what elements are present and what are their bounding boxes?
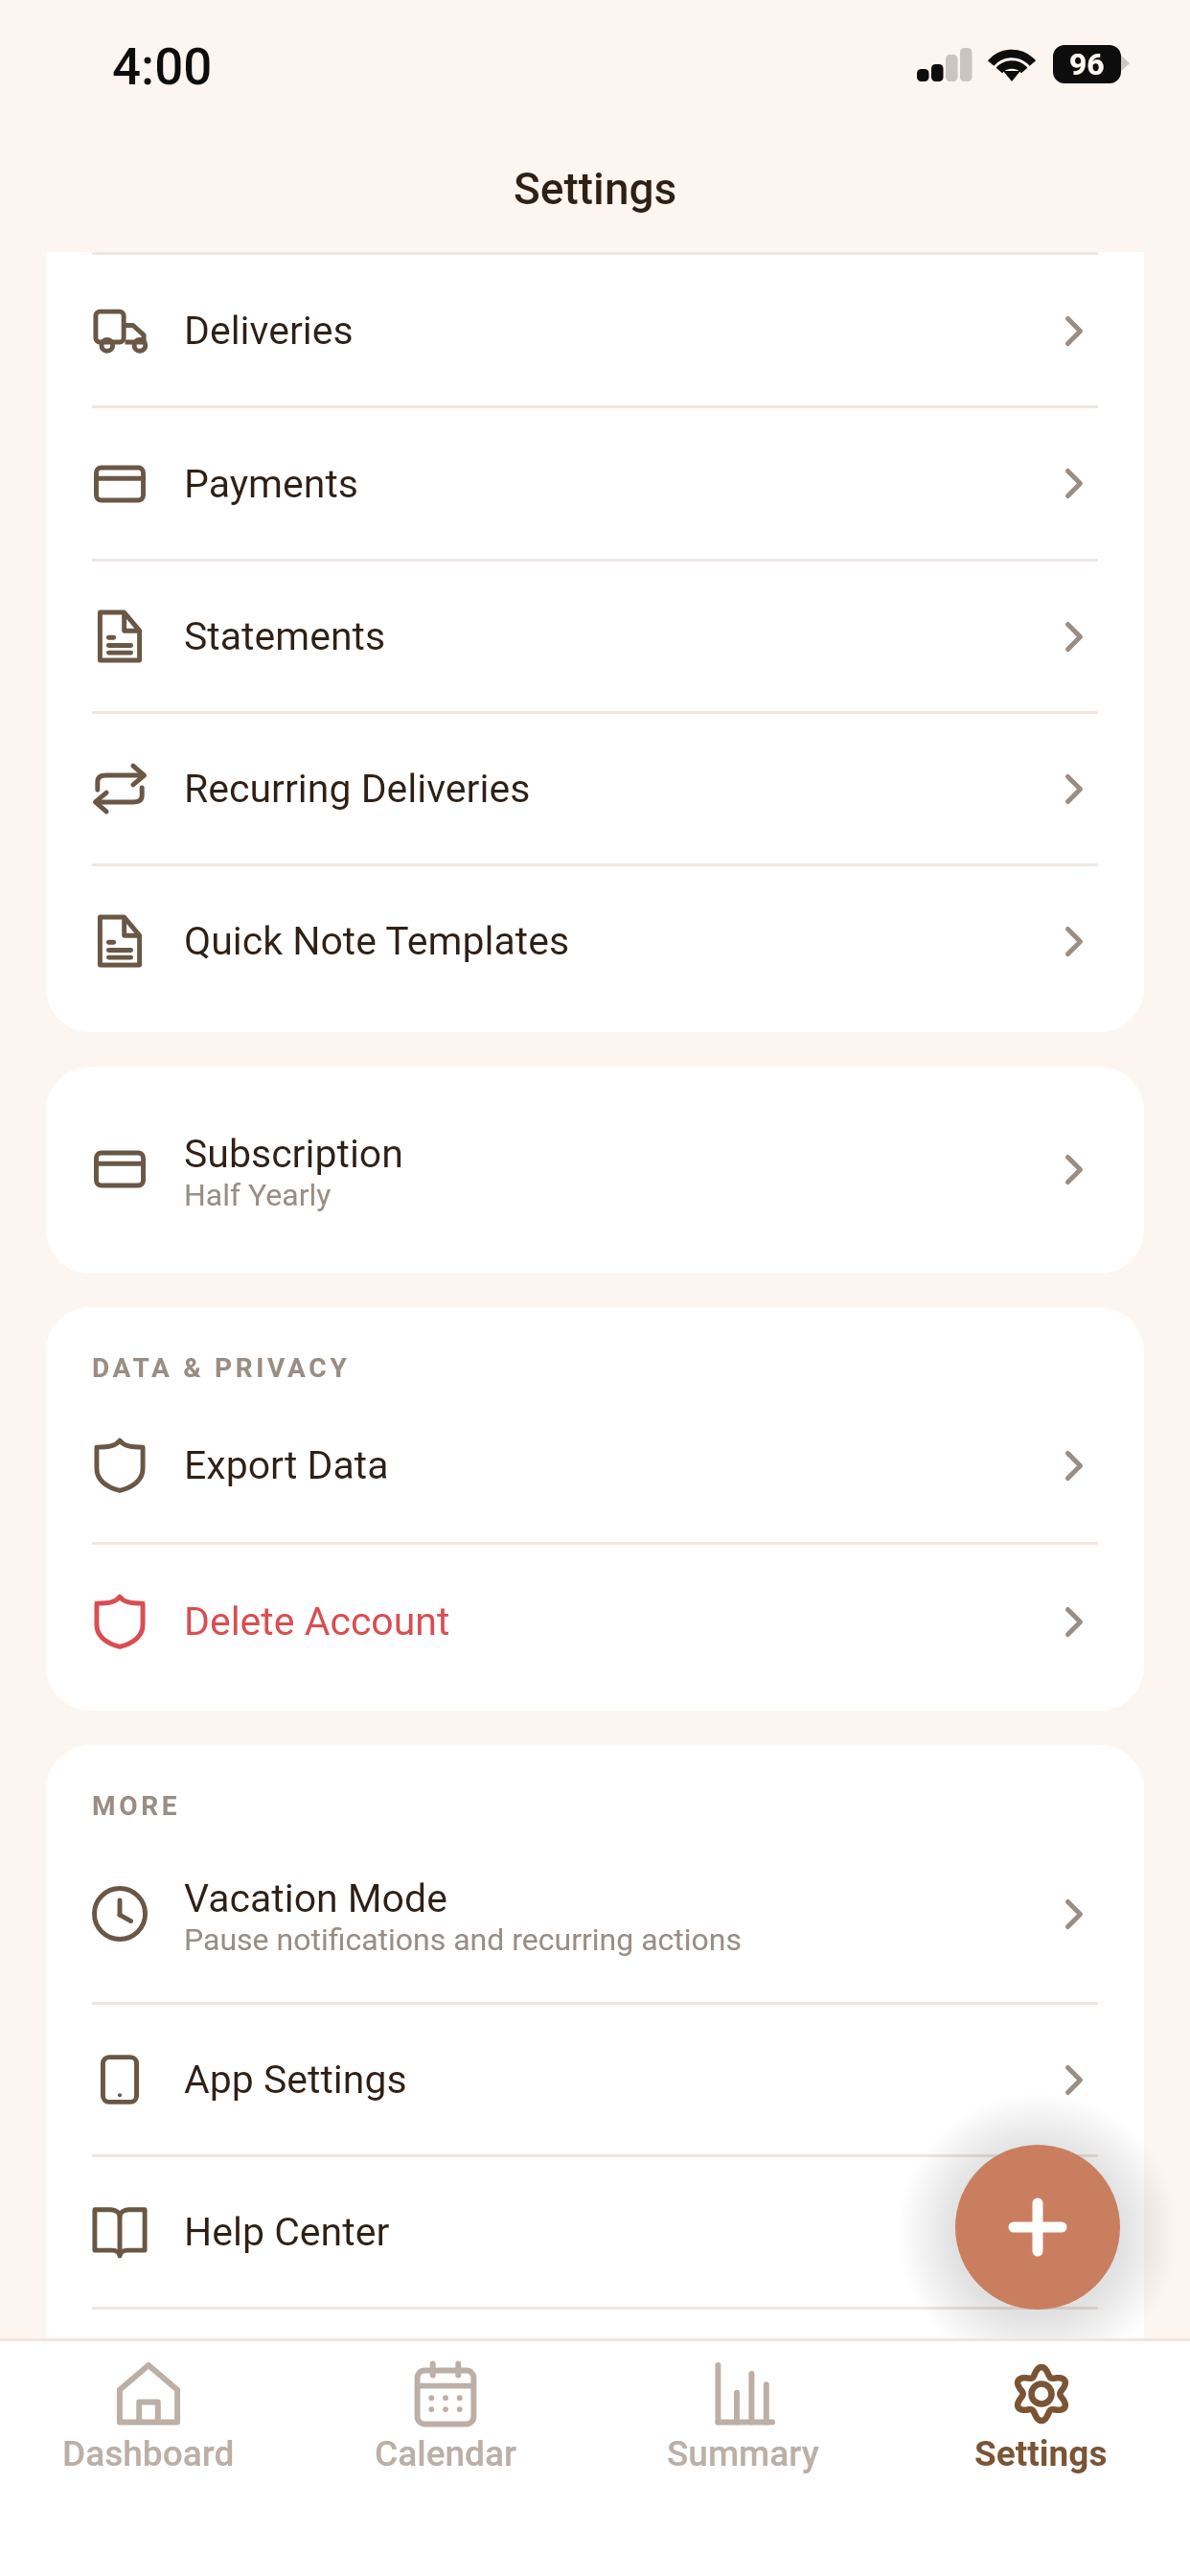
staticText: Subscription [184,1131,403,1177]
button[interactable]: App Settings [46,2005,1144,2154]
staticText: Statements [184,613,386,659]
button[interactable]: Calendar [297,2338,594,2511]
staticText: App Settings [184,2057,407,2103]
staticText: Help Center [184,2209,390,2255]
staticText: Half Yearly [184,1177,332,1213]
button[interactable]: Recurring Deliveries [46,714,1144,863]
staticText: Export Data [184,1442,389,1488]
button[interactable]: Vacation Mode [46,1826,1144,2002]
staticText: 4:00 [112,37,213,97]
button[interactable]: Delete Account [46,1545,1144,1698]
staticText: DATA & PRIVACY [92,1352,351,1384]
staticText: Calendar [375,2433,517,2474]
button[interactable]: Payments [46,408,1144,559]
staticText: Dashboard [62,2433,235,2474]
staticText: Delete Account [184,1598,450,1644]
button[interactable]: Help Center [46,2157,1144,2307]
staticText: Settings [514,163,677,215]
staticText: Deliveries [184,308,354,354]
staticText: Quick Note Templates [184,918,570,964]
staticText: Settings [974,2433,1108,2474]
button[interactable]: Dashboard [0,2338,297,2511]
staticText: MORE [92,1790,181,1822]
staticText: Pause notifications and recurring action… [184,1921,743,1958]
staticText: Recurring Deliveries [184,766,531,812]
button[interactable]: Summary [594,2338,892,2511]
button[interactable]: Deliveries [46,256,1144,405]
button[interactable]: Add [955,2145,1120,2310]
button[interactable]: Settings [892,2338,1190,2511]
button[interactable]: Subscription [46,1081,1144,1257]
staticText: 96 [1069,46,1105,82]
staticText: Summary [667,2433,819,2474]
staticText: Vacation Mode [184,1875,447,1921]
button[interactable]: Quick Note Templates [46,866,1144,1016]
button[interactable]: Statements [46,562,1144,711]
button[interactable]: Export Data [46,1389,1144,1542]
staticText: Payments [184,461,358,507]
